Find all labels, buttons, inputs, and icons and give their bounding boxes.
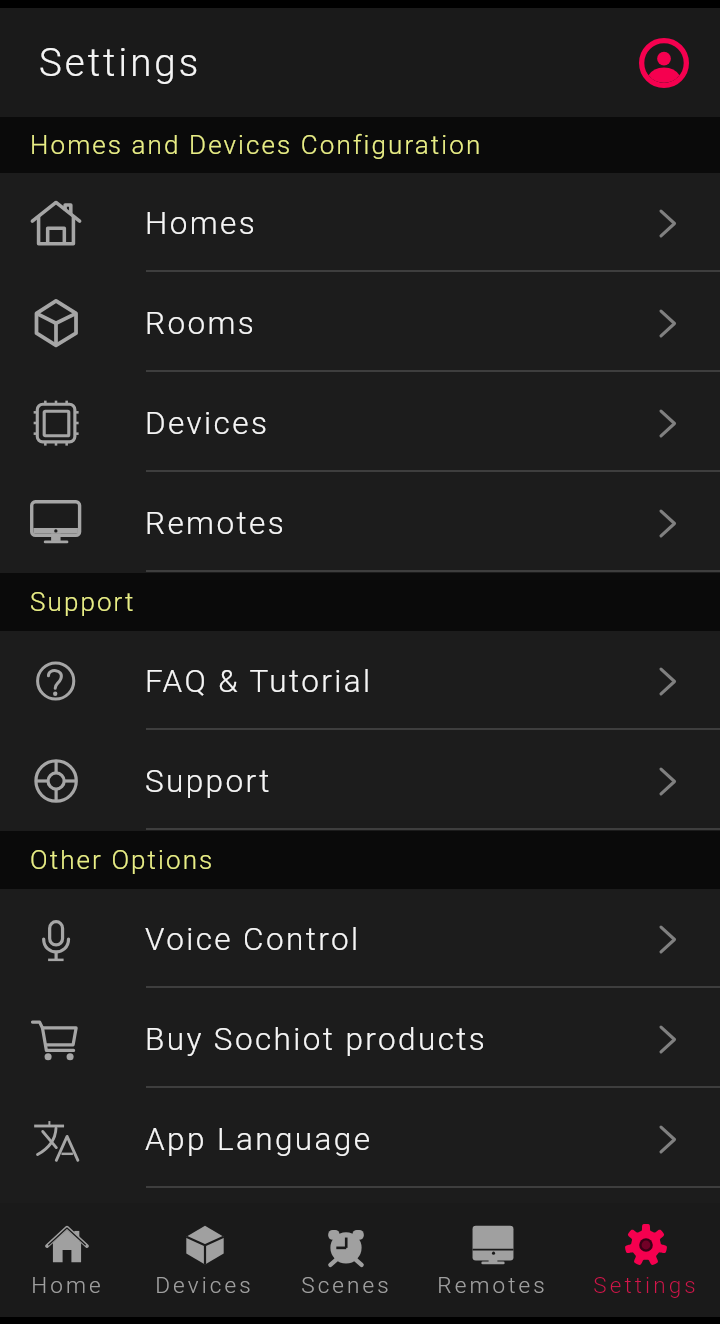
staticText: Buy Sochiot products: [145, 1021, 488, 1058]
button[interactable]: Rooms: [0, 273, 720, 373]
button[interactable]: Account: [639, 38, 689, 88]
staticText: Remotes: [437, 1272, 548, 1298]
button[interactable]: Remotes: [421, 1203, 564, 1317]
staticText: Remotes: [145, 505, 287, 542]
staticText: Settings: [39, 40, 202, 85]
button[interactable]: Devices: [139, 1203, 270, 1317]
button[interactable]: FAQ & Tutorial: [0, 631, 720, 731]
staticText: Settings: [593, 1272, 699, 1298]
button[interactable]: Scenes: [277, 1203, 415, 1317]
staticText: Other Options: [30, 845, 215, 875]
button[interactable]: Settings: [572, 1203, 720, 1317]
staticText: Home: [31, 1272, 104, 1298]
button[interactable]: Buy Sochiot products: [0, 989, 720, 1089]
button[interactable]: App Language: [0, 1089, 720, 1189]
button[interactable]: Homes: [0, 173, 720, 273]
staticText: Homes: [145, 205, 258, 242]
staticText: Rooms: [145, 305, 257, 342]
button[interactable]: Home: [0, 1203, 134, 1317]
staticText: Scenes: [301, 1272, 392, 1298]
staticText: Homes and Devices Configuration: [30, 130, 483, 160]
staticText: App Language: [145, 1121, 373, 1158]
staticText: Support: [30, 587, 136, 617]
staticText: Devices: [155, 1272, 254, 1298]
button[interactable]: Remotes: [0, 473, 720, 573]
button[interactable]: Devices: [0, 373, 720, 473]
button[interactable]: Voice Control: [0, 889, 720, 989]
button[interactable]: Support: [0, 731, 720, 831]
staticText: Devices: [145, 405, 270, 442]
staticText: Voice Control: [145, 921, 361, 958]
staticText: FAQ & Tutorial: [145, 663, 373, 700]
staticText: Support: [145, 763, 272, 800]
